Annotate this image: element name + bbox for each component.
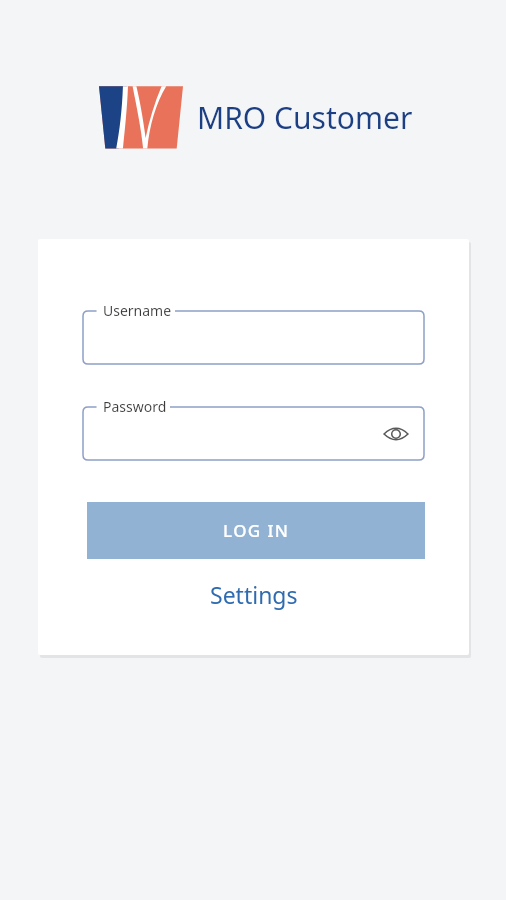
staticText: Settings xyxy=(210,579,298,610)
button[interactable]: LOG IN xyxy=(87,502,425,559)
button[interactable]: Username xyxy=(83,301,424,364)
staticText: MRO Customer xyxy=(197,97,413,138)
other: MRO logo xyxy=(99,82,183,152)
button[interactable]: Show password xyxy=(380,418,412,450)
staticText: LOG IN xyxy=(223,519,290,542)
staticText: Password xyxy=(103,397,167,416)
staticText: Username xyxy=(103,301,172,320)
button[interactable]: Settings xyxy=(190,573,318,616)
button[interactable]: Password xyxy=(83,397,424,460)
